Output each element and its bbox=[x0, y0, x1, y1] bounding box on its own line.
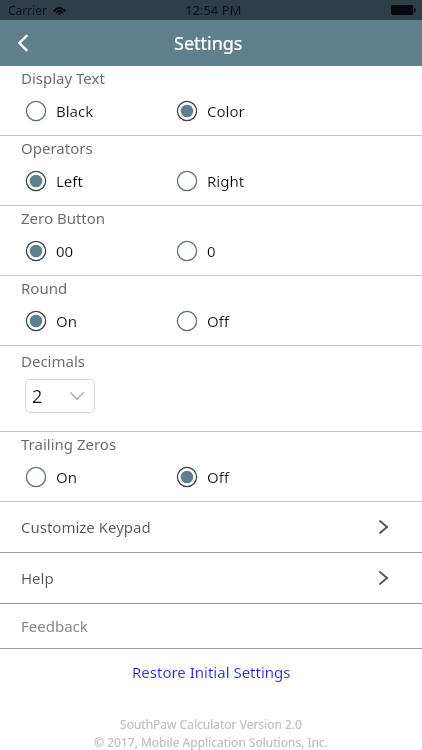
staticText: Round bbox=[21, 278, 68, 298]
staticText: Feedback bbox=[21, 616, 88, 636]
staticText: On bbox=[56, 467, 77, 487]
button[interactable]: 0 bbox=[175, 239, 216, 263]
staticText: 00 bbox=[56, 241, 74, 261]
staticText: Help bbox=[21, 568, 54, 588]
button[interactable]: 2 bbox=[25, 379, 95, 413]
staticText: Off bbox=[207, 311, 230, 331]
staticText: 0 bbox=[207, 241, 216, 261]
staticText: Display Text bbox=[21, 68, 105, 88]
staticText: Right bbox=[207, 171, 245, 191]
button[interactable]: Help bbox=[0, 553, 422, 603]
button[interactable]: Black bbox=[24, 99, 175, 123]
button[interactable]: Off bbox=[175, 465, 230, 489]
button[interactable]: 00 bbox=[24, 239, 175, 263]
staticText: Operators bbox=[21, 138, 93, 158]
staticText: © 2017, Mobile Application Solutions, In… bbox=[94, 734, 328, 750]
staticText: 12:54 PM bbox=[185, 1, 242, 19]
staticText: Carrier bbox=[8, 2, 48, 18]
staticText: Restore Initial Settings bbox=[132, 662, 291, 682]
staticText: Settings bbox=[174, 31, 243, 56]
staticText: Decimals bbox=[21, 351, 85, 371]
button[interactable]: Off bbox=[175, 309, 230, 333]
staticText: Customize Keypad bbox=[21, 517, 151, 537]
button[interactable]: Color bbox=[175, 99, 245, 123]
staticText: Color bbox=[207, 101, 245, 121]
staticText: On bbox=[56, 311, 77, 331]
button[interactable]: Left bbox=[24, 169, 175, 193]
staticText: Off bbox=[207, 467, 230, 487]
button[interactable]: Right bbox=[175, 169, 245, 193]
button[interactable]: Back bbox=[0, 20, 46, 66]
button[interactable]: Restore Initial Settings bbox=[118, 656, 305, 688]
staticText: Black bbox=[56, 101, 94, 121]
staticText: 2 bbox=[32, 384, 43, 409]
button[interactable]: Customize Keypad bbox=[0, 502, 422, 552]
button[interactable]: Feedback bbox=[0, 604, 422, 648]
staticText: Left bbox=[56, 171, 83, 191]
staticText: Zero Button bbox=[21, 208, 106, 228]
staticText: Trailing Zeros bbox=[21, 434, 117, 454]
button[interactable]: On bbox=[24, 465, 175, 489]
staticText: SouthPaw Calculator Version 2.0 bbox=[120, 716, 302, 732]
button[interactable]: On bbox=[24, 309, 175, 333]
